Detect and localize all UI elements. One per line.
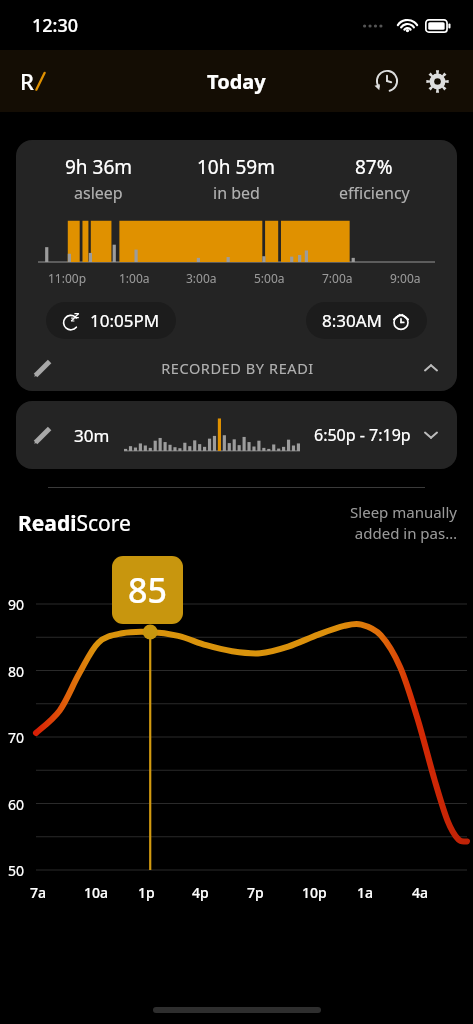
- staticText: 4p: [192, 883, 209, 902]
- staticText: 7:00a: [322, 270, 353, 286]
- button[interactable]: History: [365, 59, 409, 103]
- staticText: RECORDED BY READI: [54, 358, 421, 378]
- staticText: 7a: [30, 883, 47, 902]
- staticText: 8:30AM: [322, 309, 383, 332]
- staticText: 7p: [247, 883, 264, 902]
- staticText: 9h 36m: [65, 154, 133, 180]
- button[interactable]: Readi home: [16, 62, 51, 100]
- staticText: asleep: [74, 182, 123, 204]
- staticText: ReadiScore: [18, 509, 337, 538]
- staticText: in bed: [213, 182, 260, 204]
- button[interactable]: Settings: [415, 59, 459, 103]
- other: Collapse: [421, 358, 441, 378]
- other: Expand: [421, 425, 441, 445]
- staticText: 90: [8, 595, 25, 614]
- staticText: 60: [8, 795, 25, 814]
- button[interactable]: 85: [112, 556, 183, 624]
- staticText: 50: [8, 861, 25, 880]
- button[interactable]: Edit nap: [16, 401, 457, 469]
- staticText: 70: [8, 728, 25, 747]
- staticText: Today: [207, 68, 266, 95]
- staticText: 80: [8, 662, 25, 681]
- staticText: 4a: [412, 883, 429, 902]
- staticText: 1a: [357, 883, 374, 902]
- staticText: 10a: [84, 883, 109, 902]
- staticText: R: [20, 66, 34, 96]
- staticText: 9:00a: [390, 270, 421, 286]
- staticText: 1p: [138, 883, 155, 902]
- button[interactable]: Edit: [16, 353, 457, 383]
- staticText: 85: [128, 567, 167, 613]
- staticText: 1:00a: [119, 270, 150, 286]
- staticText: 6:50p - 7:19p: [314, 424, 411, 446]
- button[interactable]: 9h 36m: [16, 140, 457, 391]
- staticText: 10:05PM: [90, 309, 160, 332]
- staticText: 11:00p: [48, 270, 87, 286]
- other: Edit: [32, 357, 54, 379]
- staticText: 12:30: [32, 13, 79, 38]
- staticText: efficiency: [339, 182, 410, 204]
- staticText: 5:00a: [254, 270, 285, 286]
- staticText: Sleep manually added in pas…: [337, 502, 457, 544]
- staticText: 87%: [355, 154, 393, 180]
- button[interactable]: 10:05PM: [46, 302, 176, 339]
- staticText: 3:00a: [186, 270, 217, 286]
- staticText: 10p: [302, 883, 327, 902]
- button[interactable]: 8:30AM: [306, 302, 427, 339]
- staticText: 10h 59m: [197, 154, 275, 180]
- staticText: 30m: [74, 424, 110, 447]
- other: Edit nap: [32, 424, 54, 446]
